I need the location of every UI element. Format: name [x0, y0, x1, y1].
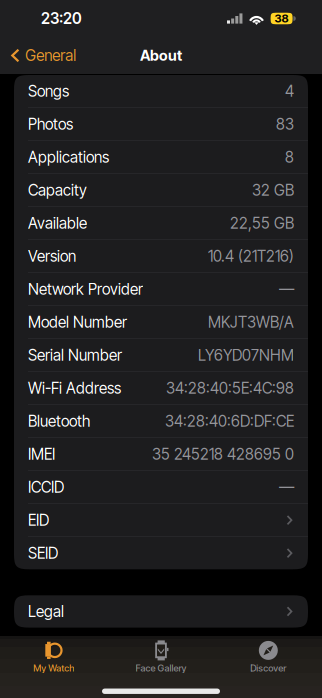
- button[interactable]: EID: [14, 504, 308, 536]
- staticText: 23:20: [41, 9, 82, 28]
- staticText: About: [140, 47, 182, 64]
- button[interactable]: Discover: [215, 635, 322, 680]
- staticText: Capacity: [28, 181, 87, 199]
- button[interactable]: SEID: [14, 537, 308, 569]
- button[interactable]: General: [0, 37, 84, 74]
- staticText: 8: [285, 148, 294, 166]
- staticText: 34:28:40:6D:DF:CE: [165, 412, 294, 430]
- staticText: 22,55 GB: [230, 214, 294, 232]
- button[interactable]: Legal: [14, 595, 308, 628]
- staticText: LY6YD07NHM: [198, 346, 294, 364]
- staticText: EID: [28, 511, 49, 529]
- staticText: My Watch: [33, 662, 74, 674]
- staticText: Version: [28, 247, 76, 265]
- staticText: —: [279, 280, 294, 298]
- staticText: IMEI: [28, 445, 55, 463]
- staticText: 38: [275, 12, 289, 25]
- staticText: —: [279, 478, 294, 496]
- staticText: 4: [285, 82, 294, 100]
- staticText: Model Number: [28, 313, 127, 331]
- staticText: Discover: [250, 662, 286, 674]
- staticText: Wi-Fi Address: [28, 379, 121, 397]
- staticText: Available: [28, 214, 87, 232]
- staticText: Legal: [28, 602, 64, 621]
- staticText: Serial Number: [28, 346, 122, 364]
- staticText: Applications: [28, 148, 109, 166]
- staticText: Bluetooth: [28, 412, 90, 430]
- staticText: 32 GB: [252, 181, 294, 199]
- staticText: 35 245218 428695 0: [152, 445, 294, 463]
- staticText: SEID: [28, 544, 58, 562]
- button[interactable]: My Watch: [0, 635, 107, 680]
- staticText: Photos: [28, 115, 73, 133]
- staticText: Songs: [28, 82, 69, 100]
- staticText: 83: [276, 115, 294, 133]
- staticText: Face Gallery: [135, 662, 186, 674]
- staticText: Network Provider: [28, 280, 143, 298]
- staticText: 34:28:40:5E:4C:98: [166, 379, 294, 397]
- button[interactable]: Face Gallery: [107, 635, 215, 680]
- staticText: MKJT3WB/A: [208, 313, 294, 331]
- staticText: ICCID: [28, 478, 64, 496]
- staticText: General: [25, 46, 76, 65]
- staticText: 10.4 (21T216): [208, 247, 294, 265]
